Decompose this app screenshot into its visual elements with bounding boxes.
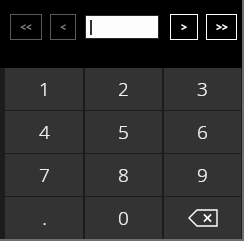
button[interactable]: 0 [85,197,162,239]
staticText: . [42,205,47,231]
button[interactable]: First [10,14,42,40]
button[interactable]: 9 [164,154,241,196]
staticText: 1 [39,76,50,102]
button[interactable]: 2 [85,68,162,110]
button[interactable]: 5 [85,111,162,153]
staticText: < [60,20,66,34]
button[interactable]: Backspace [164,197,241,239]
staticText: 6 [197,119,208,145]
button[interactable]: 3 [164,68,241,110]
staticText: 0 [118,205,129,231]
staticText: 4 [39,119,50,145]
button[interactable]: 7 [5,154,83,196]
staticText: >> [216,20,228,34]
button[interactable]: 1 [5,68,83,110]
button[interactable]: Previous [50,14,76,40]
staticText: 2 [118,76,129,102]
button[interactable]: 8 [85,154,162,196]
button[interactable]: . [5,197,83,239]
staticText: 9 [197,162,208,188]
button[interactable]: 4 [5,111,83,153]
staticText: 3 [197,76,208,102]
button[interactable] [85,15,159,39]
staticText: 5 [118,119,129,145]
button[interactable]: Last [206,14,237,40]
staticText: << [20,20,32,34]
button[interactable]: Next [170,14,198,40]
staticText: > [181,20,187,34]
button[interactable]: 6 [164,111,241,153]
staticText: 7 [39,162,50,188]
staticText: 8 [118,162,129,188]
